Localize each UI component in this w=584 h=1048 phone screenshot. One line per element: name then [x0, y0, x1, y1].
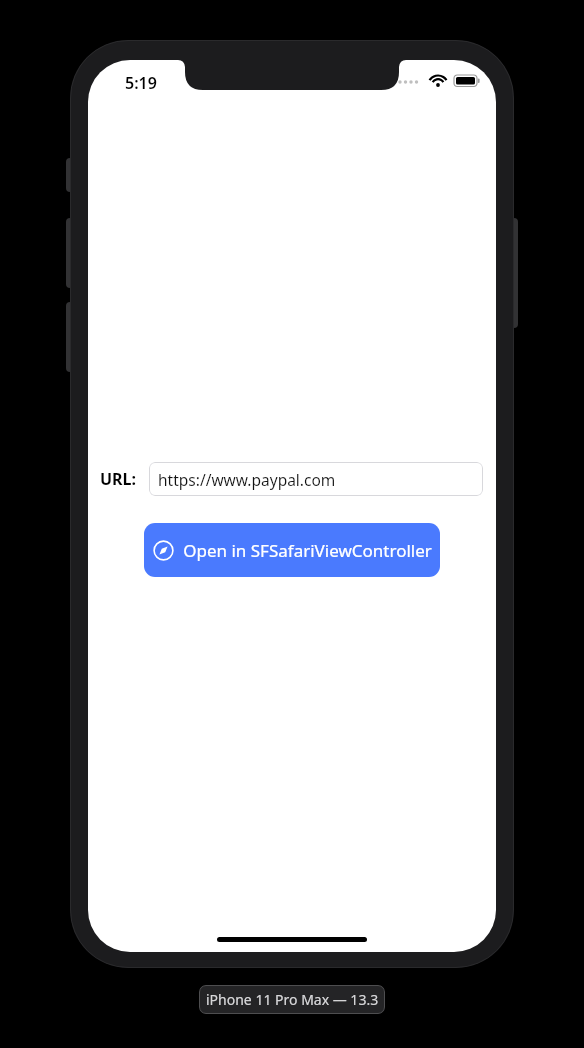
staticText: Open in SFSafariViewController	[183, 539, 432, 562]
button[interactable]: Open in SFSafariViewController	[144, 523, 440, 577]
staticText: 5:19	[125, 72, 157, 94]
button[interactable]: Device: iPhone 11 Pro Max — 13.3	[199, 985, 385, 1014]
staticText: iPhone 11 Pro Max — 13.3	[206, 990, 379, 1009]
button[interactable]: https://www.paypal.com	[149, 462, 483, 496]
staticText: https://www.paypal.com	[158, 469, 336, 490]
staticText: URL:	[100, 468, 137, 490]
